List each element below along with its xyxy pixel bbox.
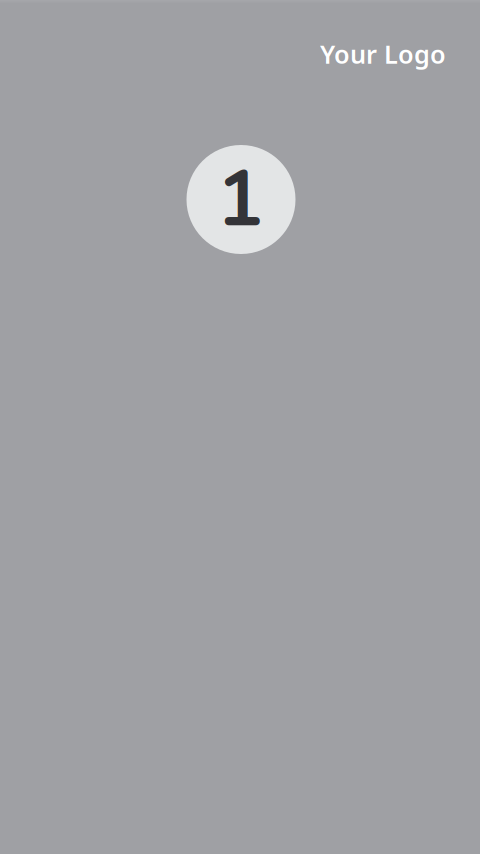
staticText: Your Logo [320, 37, 446, 71]
button[interactable]: Your Logo [320, 37, 446, 71]
staticText: 1 [217, 147, 263, 252]
